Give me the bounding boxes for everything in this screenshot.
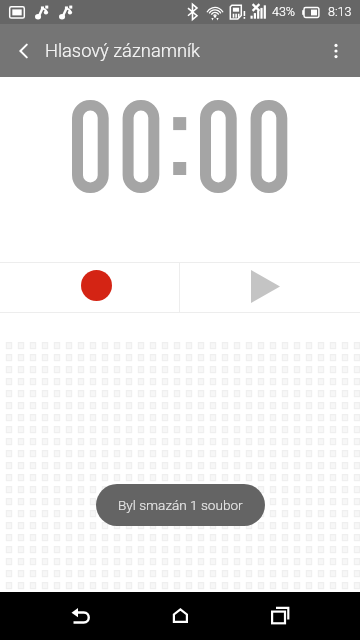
button[interactable]: Play [180, 263, 360, 312]
button[interactable]: Record [0, 263, 179, 312]
staticText: Byl smazán 1 soubor [118, 497, 243, 513]
button[interactable]: Recent apps [256, 592, 304, 640]
button[interactable]: Back [56, 592, 104, 640]
button[interactable]: Home [156, 592, 204, 640]
staticText: Hlasový záznamník [45, 40, 200, 61]
button[interactable]: Byl smazán 1 soubor [96, 484, 265, 526]
staticText: 8:13 [328, 4, 352, 19]
button[interactable]: Back [0, 27, 48, 75]
button[interactable]: More options [312, 27, 360, 75]
staticText: 43% [272, 4, 296, 19]
